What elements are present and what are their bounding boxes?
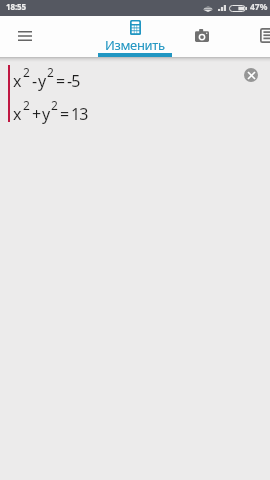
staticText: 13 (71, 103, 88, 125)
staticText: y (38, 70, 46, 92)
button[interactable]: Изменить (98, 16, 172, 57)
button[interactable]: Clear (244, 68, 258, 82)
staticText: y (42, 103, 50, 125)
staticText: -5 (67, 70, 80, 92)
staticText: 2 (47, 64, 54, 80)
staticText: = (60, 103, 69, 125)
staticText: x (13, 103, 21, 125)
button[interactable]: Camera (180, 16, 224, 57)
button[interactable]: Navigation menu (0, 16, 50, 57)
staticText: x (13, 70, 21, 92)
staticText: 2 (23, 64, 30, 80)
staticText: - (32, 70, 37, 92)
staticText: 2 (51, 97, 58, 113)
staticText: 47% (250, 1, 268, 13)
staticText: + (32, 103, 41, 125)
button[interactable]: Notes (248, 16, 270, 57)
staticText: Изменить (105, 36, 165, 54)
staticText: 18:55 (6, 1, 27, 12)
staticText: = (56, 70, 65, 92)
staticText: 2 (23, 97, 30, 113)
